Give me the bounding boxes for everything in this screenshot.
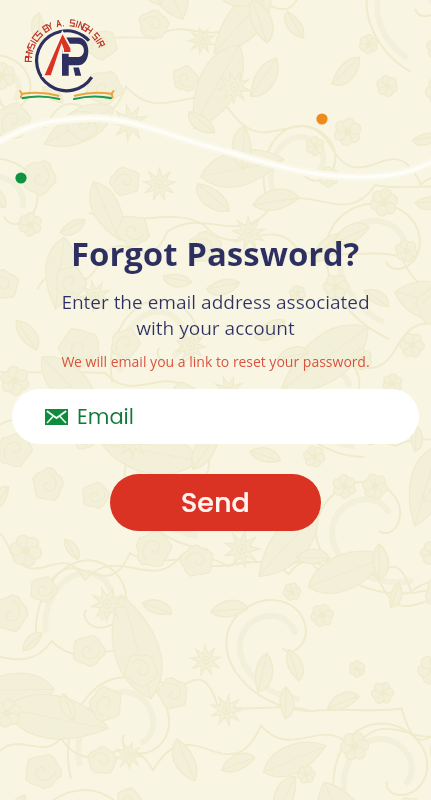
button[interactable]: Send	[110, 474, 321, 531]
staticText: Email	[77, 402, 134, 431]
staticText: Send	[181, 484, 250, 522]
staticText: Forgot Password?	[71, 231, 360, 276]
staticText: We will email you a link to reset your p…	[61, 352, 370, 371]
staticText: Enter the email address associated with …	[61, 289, 370, 341]
button[interactable]: Email	[12, 389, 419, 444]
